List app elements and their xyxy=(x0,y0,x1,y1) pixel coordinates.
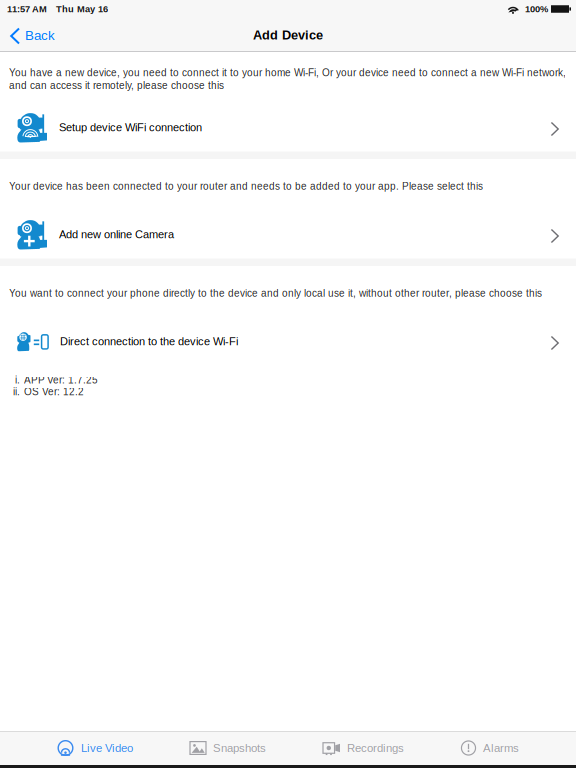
staticText: 11:57 AM xyxy=(7,4,47,14)
button[interactable]: Snapshots xyxy=(190,731,266,765)
button[interactable]: Alarms xyxy=(461,731,519,765)
staticText: Setup device WiFi connection xyxy=(59,121,202,134)
staticText: i. xyxy=(15,374,20,386)
button[interactable]: Back xyxy=(8,22,63,49)
staticText: ii. xyxy=(13,386,20,397)
staticText: Add new online Camera xyxy=(59,228,174,241)
staticText: You have a new device, you need to conne… xyxy=(9,67,566,91)
staticText: Your device has been connected to your r… xyxy=(9,181,483,192)
staticText: Add Device xyxy=(253,28,323,42)
button[interactable]: Setup device WiFi connection xyxy=(0,103,576,151)
button[interactable]: Add new online Camera xyxy=(0,210,576,258)
staticText: You want to connect your phone directly … xyxy=(9,288,542,299)
staticText: Alarms xyxy=(483,742,519,754)
staticText: Direct connection to the device Wi-Fi xyxy=(60,335,238,348)
button[interactable]: Live Video xyxy=(57,731,133,765)
button[interactable]: Recordings xyxy=(323,731,404,765)
staticText: Recordings xyxy=(347,742,404,754)
staticText: Snapshots xyxy=(213,742,266,754)
staticText: Back xyxy=(25,28,55,43)
staticText: 100% xyxy=(519,4,548,14)
staticText: OS Ver: 12.2 xyxy=(24,386,84,397)
staticText: Thu May 16 xyxy=(47,4,108,14)
button[interactable]: Direct connection to the device Wi-Fi xyxy=(0,317,576,365)
staticText: Live Video xyxy=(81,742,133,754)
staticText: APP Ver: 1.7.25 xyxy=(24,374,98,386)
